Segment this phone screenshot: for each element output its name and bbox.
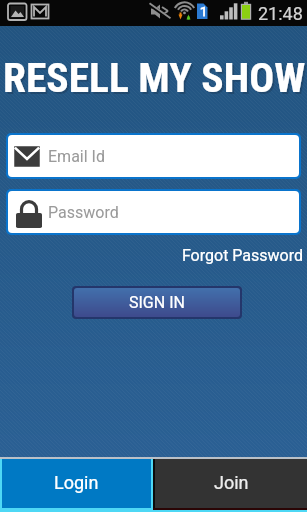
button[interactable]: SIGN IN (74, 288, 240, 317)
staticText: SIGN IN (129, 293, 185, 312)
staticText: Password (48, 203, 119, 222)
staticText: Email Id (48, 147, 105, 166)
staticText: Login (54, 472, 99, 493)
button[interactable]: Email Id (8, 135, 299, 177)
staticText: RESELL MY SHOW (3, 53, 306, 102)
button[interactable]: Login (0, 459, 153, 508)
staticText: 21:48 (258, 3, 303, 24)
staticText: Join (214, 472, 249, 493)
button[interactable]: Forgot Password (0, 246, 303, 265)
button[interactable]: Password (8, 191, 299, 233)
staticText: RESELL MY SHOW (5, 55, 307, 104)
button[interactable]: Join (155, 459, 307, 508)
staticText: Forgot Password (0, 246, 303, 265)
staticText: 1 (200, 4, 208, 19)
